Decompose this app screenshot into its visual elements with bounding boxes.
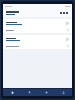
button[interactable]: Saved xyxy=(21,89,38,96)
button[interactable]: Profile xyxy=(55,89,72,96)
button[interactable]: Home xyxy=(3,89,21,96)
button[interactable]: More options xyxy=(3,43,72,49)
button[interactable]: Open item xyxy=(3,19,72,27)
button[interactable]: Open item xyxy=(3,35,72,43)
button[interactable]: Alerts xyxy=(38,89,55,96)
button[interactable]: Open item xyxy=(66,22,69,25)
button[interactable]: Open item xyxy=(66,38,69,41)
button[interactable]: Header actions xyxy=(59,10,69,16)
button[interactable]: More options xyxy=(3,27,72,33)
